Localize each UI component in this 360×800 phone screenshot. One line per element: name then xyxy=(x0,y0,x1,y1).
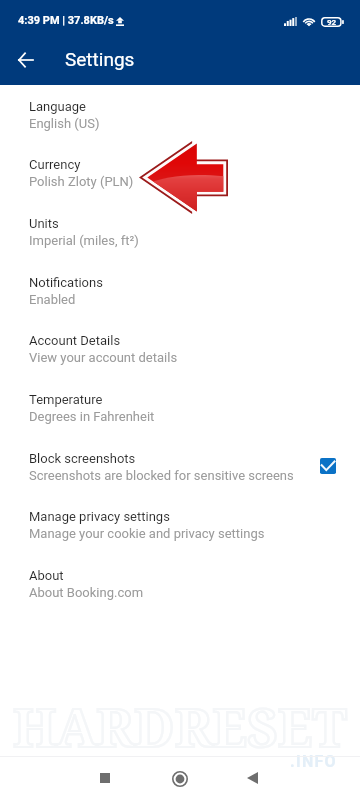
button[interactable]: Home xyxy=(163,762,197,796)
button[interactable]: Notifications xyxy=(0,260,360,319)
staticText: Manage your cookie and privacy settings xyxy=(29,526,265,541)
staticText: View your account details xyxy=(29,350,178,365)
staticText: Temperature xyxy=(29,392,103,407)
staticText: Screenshots are blocked for sensitive sc… xyxy=(29,468,294,483)
button[interactable]: Account Details xyxy=(0,318,360,377)
staticText: About xyxy=(29,568,64,583)
staticText: 92 xyxy=(327,18,337,27)
button[interactable]: Language xyxy=(0,84,360,143)
button[interactable]: About xyxy=(0,553,360,612)
staticText: Block screenshots xyxy=(29,451,136,466)
button[interactable]: Manage privacy settings xyxy=(0,494,360,553)
staticText: Manage privacy settings xyxy=(29,509,170,524)
button[interactable]: Block screenshots xyxy=(0,436,360,495)
button[interactable]: Temperature xyxy=(0,377,360,436)
button[interactable]: Recent apps xyxy=(88,761,122,795)
other: Annotation arrow pointing at Currency xyxy=(139,141,228,214)
staticText: Units xyxy=(29,216,59,231)
staticText: Language xyxy=(29,99,86,114)
button[interactable]: Units xyxy=(0,201,360,260)
button[interactable]: Currency xyxy=(0,142,360,201)
button[interactable]: Block screenshots toggle xyxy=(320,458,336,474)
staticText: Polish Zloty (PLN) xyxy=(29,174,134,189)
staticText: HARDRESET xyxy=(13,690,347,762)
staticText: Account Details xyxy=(29,333,121,348)
staticText: Settings xyxy=(65,48,135,70)
staticText: Notifications xyxy=(29,275,103,290)
button[interactable]: Back xyxy=(235,761,269,795)
staticText: Degrees in Fahrenheit xyxy=(29,409,155,424)
staticText: About Booking.com xyxy=(29,585,144,600)
staticText: 4:39 PM | 37.8KB/s xyxy=(18,14,114,27)
button[interactable]: Back xyxy=(5,40,45,80)
staticText: English (US) xyxy=(29,116,100,131)
staticText: Imperial (miles, ft²) xyxy=(29,233,139,248)
staticText: .INFO xyxy=(290,752,337,771)
staticText: Currency xyxy=(29,157,81,172)
staticText: Enabled xyxy=(29,292,76,307)
